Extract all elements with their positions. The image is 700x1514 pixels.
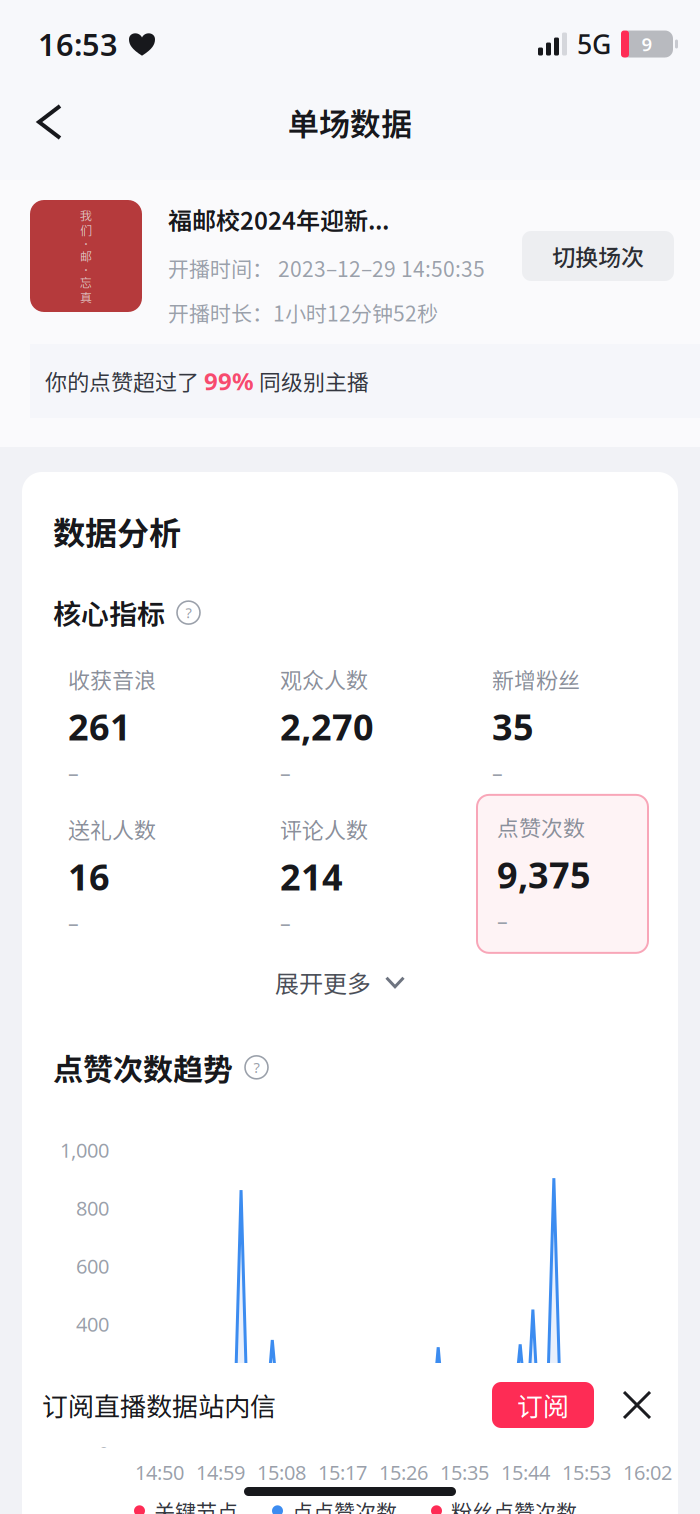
staticText: 15:53	[562, 1459, 611, 1486]
staticText: 开播时间： 2023–12–29 14:50:35	[168, 253, 485, 283]
button[interactable]: 订阅	[492, 1382, 594, 1428]
staticText: 15:35	[440, 1459, 489, 1486]
staticText: 点赞次数趋势	[53, 1046, 233, 1089]
staticText: 订阅直播数据站内信	[42, 1386, 276, 1424]
staticText: 邮	[80, 247, 92, 265]
staticText: 9,375	[497, 851, 591, 898]
staticText: 们	[80, 221, 92, 239]
staticText: ?	[253, 1058, 259, 1077]
staticText: 200	[76, 1369, 109, 1395]
staticText: 真	[80, 288, 92, 306]
staticText: ?	[185, 603, 191, 622]
staticText: –	[492, 758, 503, 787]
staticText: 16	[68, 853, 110, 900]
staticText: 800	[76, 1195, 109, 1221]
staticText: 99%	[204, 365, 254, 397]
staticText: 15:44	[501, 1459, 550, 1486]
staticText: 9	[641, 32, 652, 56]
staticText: 送礼人数	[68, 813, 156, 845]
staticText: 核心指标	[53, 592, 165, 633]
staticText: 展开更多	[275, 965, 371, 1000]
staticText: 35	[492, 703, 534, 750]
staticText: 15:26	[379, 1459, 428, 1486]
staticText: 261	[68, 703, 131, 750]
staticText: 单场数据	[288, 100, 412, 144]
staticText: 你的点赞超过了	[45, 365, 204, 397]
staticText: 忘	[80, 273, 92, 291]
staticText: 数据分析	[53, 508, 181, 554]
button[interactable]: 展开更多	[265, 953, 415, 1012]
staticText: 我	[80, 206, 92, 224]
button[interactable]: Back	[0, 88, 84, 156]
staticText: 0	[98, 1427, 109, 1453]
staticText: 2,270	[280, 703, 374, 750]
staticText: 观众人数	[280, 663, 368, 695]
staticText: 400	[76, 1311, 109, 1337]
staticText: 新增粉丝	[492, 663, 580, 695]
staticText: 214	[280, 853, 343, 900]
staticText: –	[68, 908, 79, 937]
staticText: 16:02	[623, 1459, 672, 1486]
staticText: 评论人数	[280, 813, 368, 845]
staticText: 点点赞次数	[292, 1496, 397, 1514]
staticText: 粉丝点赞次数	[451, 1496, 577, 1514]
staticText: 开播时长：1小时12分钟52秒	[168, 297, 438, 328]
staticText: 订阅	[517, 1386, 569, 1424]
staticText: 点赞次数	[497, 811, 585, 843]
staticText: –	[280, 908, 291, 937]
button[interactable]: Close	[594, 1372, 656, 1438]
staticText: –	[68, 758, 79, 787]
staticText: 16:53	[38, 24, 118, 64]
staticText: 5G	[577, 26, 611, 62]
staticText: –	[497, 906, 508, 935]
staticText: 收获音浪	[68, 663, 156, 695]
staticText: ·	[81, 262, 90, 275]
staticText: 14:59	[196, 1459, 245, 1486]
staticText: 1,000	[60, 1137, 109, 1163]
staticText: 福邮校2024年迎新...	[168, 202, 389, 237]
staticText: 600	[76, 1253, 109, 1279]
staticText: ·	[81, 236, 90, 249]
staticText: –	[280, 758, 291, 787]
staticText: 15:17	[318, 1459, 367, 1486]
staticText: 切换场次	[552, 239, 644, 273]
staticText: 15:08	[257, 1459, 306, 1486]
staticText: 14:50	[135, 1459, 184, 1486]
staticText: 关键节点	[154, 1496, 238, 1514]
button[interactable]: 切换场次	[522, 231, 674, 281]
staticText: 同级别主播	[254, 365, 369, 397]
